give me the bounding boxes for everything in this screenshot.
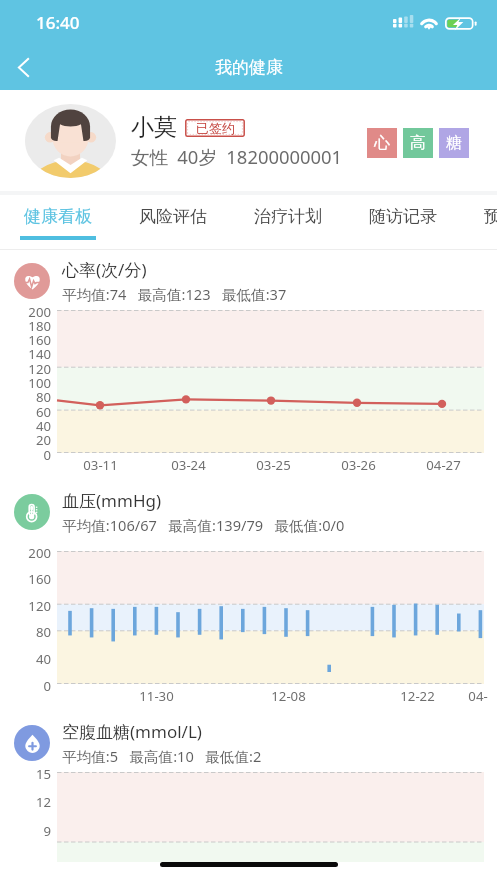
staticText: 平均值:74 最高值:123 最低值:37 [62,284,287,304]
staticText: 平均值:106/67 最高值:139/79 最低值:0/0 [62,515,345,535]
staticText: 已签约 [196,120,235,136]
staticText: 预约挂号 [484,206,497,227]
staticText: 血压(mmHg) [62,489,162,512]
button[interactable]: 高 [403,128,433,158]
staticText: 女性 40岁 18200000001 [131,144,343,169]
button[interactable]: 心率(次/分) [14,258,497,304]
staticText: 糖 [446,133,462,153]
staticText: 高 [410,133,426,153]
staticText: 03-11 [83,456,118,474]
staticText: 平均值:5 最高值:10 最低值:2 [62,746,262,766]
staticText: 随访记录 [369,206,437,227]
staticText: 120 [28,360,51,378]
button[interactable]: 治疗计划 [230,195,345,249]
staticText: 0 [43,446,51,464]
staticText: 60 [35,403,51,421]
staticText: 健康看板 [24,206,92,227]
button[interactable]: 已签约 [185,119,245,137]
staticText: 40 [35,417,51,435]
button[interactable]: 预约挂号 [460,195,497,249]
button[interactable]: 心 [367,128,397,158]
staticText: 11-30 [139,687,174,705]
staticText: 空腹血糖(mmol/L) [62,720,202,743]
staticText: 180 [28,317,51,335]
staticText: 160 [28,331,51,349]
staticText: 12-08 [271,687,306,705]
staticText: 200 [28,544,51,562]
staticText: 20 [35,431,51,449]
staticText: 03-24 [171,456,206,474]
staticText: 我的健康 [215,57,283,78]
staticText: 140 [28,345,51,363]
staticText: 小莫 [131,113,177,142]
button[interactable]: 血压(mmHg) [14,489,497,535]
button[interactable]: 糖 [439,128,469,158]
staticText: 15 [35,765,51,783]
staticText: 120 [28,597,51,615]
staticText: 04-27 [426,456,461,474]
staticText: 心 [374,133,390,153]
staticText: 80 [35,388,51,406]
staticText: 100 [28,374,51,392]
button[interactable]: 风险评估 [115,195,230,249]
staticText: 治疗计划 [254,206,322,227]
staticText: 160 [28,570,51,588]
staticText: 12 [35,793,51,811]
staticText: 40 [35,650,51,668]
button[interactable]: 小莫 [0,90,497,191]
staticText: 12-22 [400,687,435,705]
staticText: 04- [468,687,488,705]
staticText: 03-26 [341,456,376,474]
button[interactable]: 空腹血糖(mmol/L) [14,720,497,766]
button[interactable]: 健康看板 [0,195,115,249]
staticText: 9 [43,822,51,840]
staticText: 心率(次/分) [62,258,147,281]
button[interactable]: 随访记录 [345,195,460,249]
button[interactable]: Back [0,45,46,90]
staticText: 16:40 [36,11,80,34]
staticText: 200 [28,303,51,321]
staticText: 风险评估 [139,206,207,227]
staticText: 0 [43,677,51,695]
staticText: 80 [35,623,51,641]
staticText: 03-25 [256,456,291,474]
